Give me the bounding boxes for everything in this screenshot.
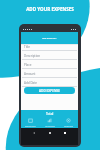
staticText: ADD YOUR EXPENSES [0, 6, 100, 12]
button[interactable]: Settings [59, 117, 78, 128]
staticText: Amount [24, 72, 36, 76]
staticText: Description [24, 54, 41, 58]
staticText: Place [24, 63, 32, 67]
staticText: Total [46, 112, 54, 116]
button[interactable]: ADD EXPENSE [24, 87, 75, 94]
button[interactable]: Analytics [40, 117, 59, 128]
button[interactable]: Back [33, 132, 35, 134]
button[interactable]: Expenses [21, 117, 40, 128]
staticText: Add Date [24, 81, 38, 85]
staticText: Title [24, 45, 30, 49]
staticText: ADD EXPENSE [39, 89, 61, 93]
staticText: Expenses [25, 124, 36, 127]
staticText: Settings [64, 124, 74, 127]
staticText: Analytics [45, 124, 55, 127]
staticText: ADD EXPENSES [42, 37, 57, 40]
